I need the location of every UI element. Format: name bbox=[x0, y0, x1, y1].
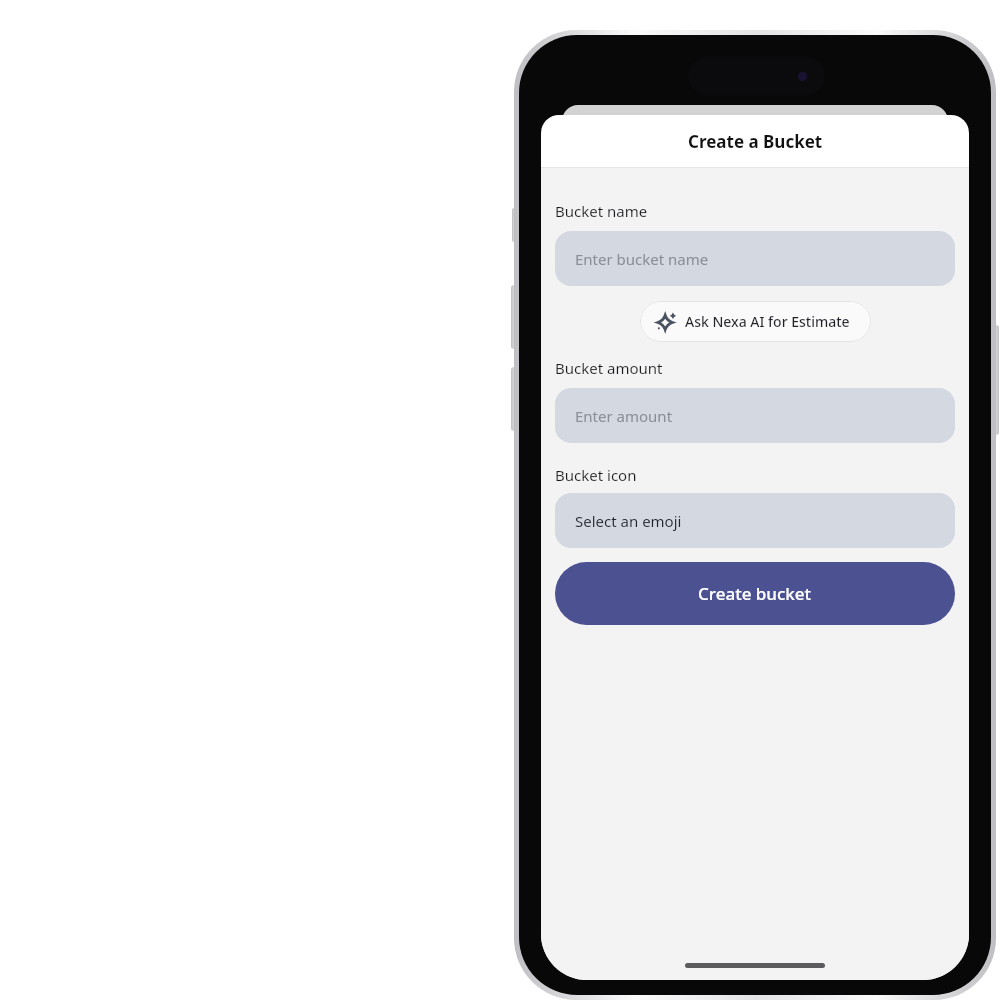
button[interactable]: Enter bucket name bbox=[555, 231, 955, 286]
staticText: Select an emoji bbox=[575, 511, 682, 531]
button[interactable]: Enter amount bbox=[555, 388, 955, 443]
staticText: Create bucket bbox=[698, 582, 812, 605]
staticText: Bucket name bbox=[555, 201, 648, 221]
staticText: Enter bucket name bbox=[575, 249, 709, 269]
staticText: Bucket icon bbox=[555, 465, 637, 485]
staticText: Ask Nexa AI for Estimate bbox=[685, 312, 850, 331]
staticText: Enter amount bbox=[575, 406, 673, 426]
button[interactable]: Select an emoji bbox=[555, 493, 955, 548]
staticText: Create a Bucket bbox=[688, 130, 823, 153]
staticText: Bucket amount bbox=[555, 358, 663, 378]
button[interactable]: Create bucket bbox=[555, 562, 955, 625]
button[interactable]: Ask Nexa AI for Estimate bbox=[640, 301, 871, 342]
